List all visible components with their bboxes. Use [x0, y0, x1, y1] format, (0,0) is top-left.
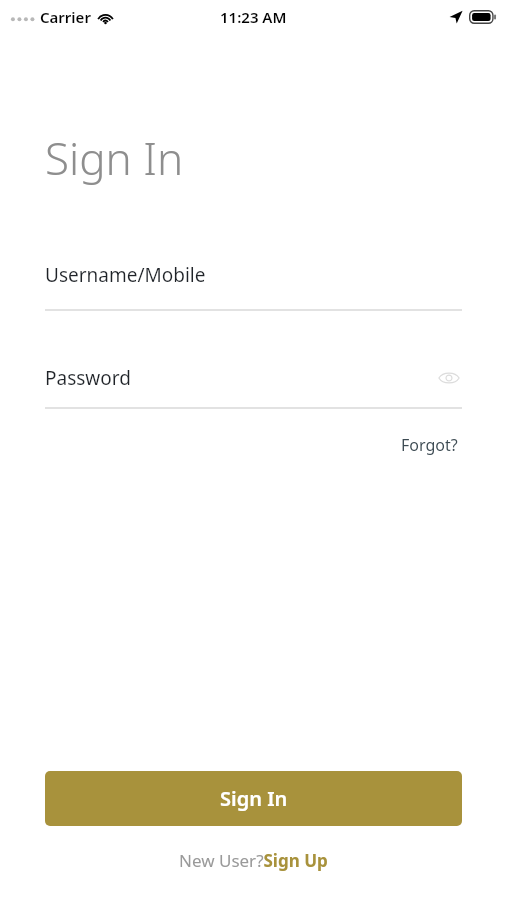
button[interactable]: Show password — [436, 365, 462, 391]
button[interactable]: Forgot? — [397, 430, 462, 460]
staticText: New User?Sign Up — [179, 849, 328, 872]
staticText: Carrier — [40, 7, 91, 27]
staticText: 11:23 AM — [220, 7, 287, 27]
button[interactable]: Username/Mobile — [45, 262, 462, 311]
staticText: Username/Mobile — [45, 262, 206, 288]
staticText: Sign In — [45, 128, 184, 188]
staticText: Password — [45, 365, 131, 391]
staticText: Forgot? — [401, 434, 458, 456]
button[interactable]: New User?Sign Up — [179, 849, 328, 872]
button[interactable]: Sign In — [45, 771, 462, 826]
staticText: Sign In — [220, 785, 288, 812]
